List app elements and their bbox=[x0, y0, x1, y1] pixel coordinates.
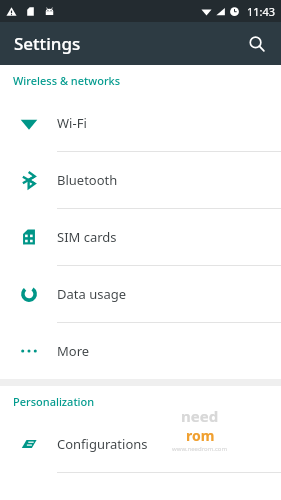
staticText: 11:43 bbox=[247, 4, 276, 19]
button[interactable]: Search bbox=[241, 28, 273, 60]
staticText: Bluetooth bbox=[57, 171, 118, 189]
button[interactable]: Configurations bbox=[0, 416, 281, 473]
staticText: Wireless & networks bbox=[13, 73, 121, 88]
button[interactable]: Bluetooth bbox=[0, 152, 281, 209]
staticText: Wi-Fi bbox=[57, 114, 87, 132]
staticText: SIM cards bbox=[57, 228, 117, 246]
staticText: More bbox=[57, 342, 90, 360]
staticText: Data usage bbox=[57, 285, 127, 303]
staticText: Settings bbox=[14, 32, 81, 55]
staticText: www.needrom.com bbox=[172, 445, 228, 453]
button[interactable]: More bbox=[0, 323, 281, 379]
button[interactable]: Wi-Fi bbox=[0, 95, 281, 152]
staticText: need bbox=[181, 406, 219, 426]
button[interactable]: Data usage bbox=[0, 266, 281, 323]
button[interactable]: SIM cards bbox=[0, 209, 281, 266]
staticText: rom bbox=[186, 426, 215, 445]
staticText: Personalization bbox=[13, 394, 95, 409]
staticText: Configurations bbox=[57, 435, 148, 453]
